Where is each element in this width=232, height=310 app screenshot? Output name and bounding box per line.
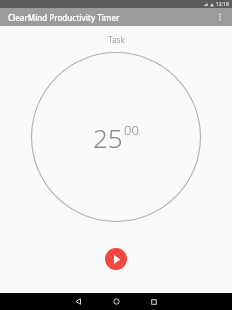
staticText: 00 — [124, 121, 139, 139]
button[interactable]: Home — [101, 293, 131, 310]
button[interactable]: More options — [212, 9, 228, 25]
staticText: Task — [108, 34, 125, 45]
button[interactable]: Back — [63, 293, 93, 310]
button[interactable]: 25 — [31, 52, 201, 222]
staticText: 12:19 — [216, 1, 229, 8]
button[interactable]: Start timer — [105, 248, 127, 270]
staticText: 25 — [93, 120, 123, 155]
staticText: ClearMind Productivity Timer — [8, 12, 120, 23]
button[interactable]: Recent apps — [139, 293, 169, 310]
